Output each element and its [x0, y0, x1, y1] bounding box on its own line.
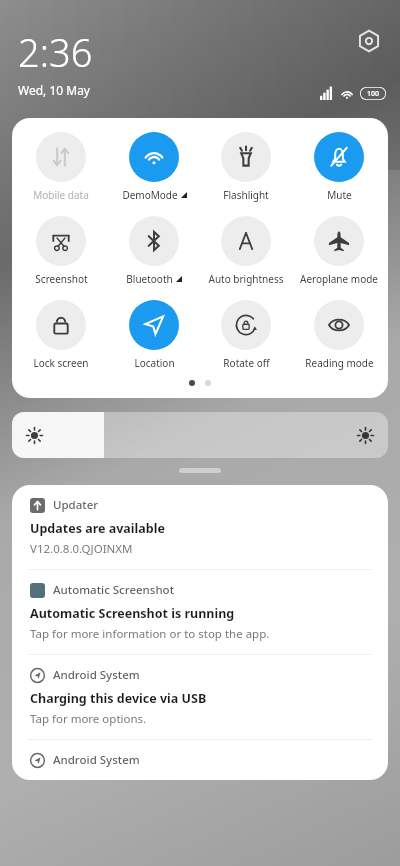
button[interactable]: Android System: [12, 740, 388, 780]
button[interactable]: Mobile data: [17, 130, 105, 204]
staticText: Tap for more options.: [30, 711, 147, 727]
staticText: 2:36: [18, 26, 93, 78]
button[interactable]: Automatic Screenshot: [12, 570, 388, 654]
button[interactable]: Aeroplane mode: [295, 214, 383, 288]
staticText: 100: [367, 89, 380, 99]
staticText: Android System: [53, 752, 140, 768]
staticText: Location: [134, 356, 175, 370]
staticText: Reading mode: [305, 356, 374, 370]
button[interactable]: Mute: [295, 130, 383, 204]
staticText: Lock screen: [33, 356, 89, 370]
staticText: Rotate off: [223, 356, 270, 370]
staticText: Flashlight: [223, 188, 269, 202]
staticText: Updates are available: [30, 520, 165, 537]
button[interactable]: Updater: [12, 485, 388, 569]
button[interactable]: Rotate off: [202, 298, 290, 372]
staticText: Android System: [53, 667, 140, 683]
staticText: Mobile data: [33, 188, 89, 202]
staticText: Auto brightness: [208, 272, 284, 286]
staticText: Tap for more information or to stop the …: [30, 626, 270, 642]
button[interactable]: DemoMode: [110, 130, 198, 204]
staticText: Bluetooth: [126, 272, 173, 286]
staticText: DemoMode: [122, 188, 178, 202]
button[interactable]: Brightness: [12, 412, 388, 458]
button[interactable]: Android System: [12, 655, 388, 739]
staticText: Mute: [327, 188, 352, 202]
button[interactable]: Reading mode: [295, 298, 383, 372]
button[interactable]: Auto brightness: [202, 214, 290, 288]
staticText: Wed, 10 May: [18, 82, 90, 98]
staticText: Screenshot: [35, 272, 88, 286]
button[interactable]: Flashlight: [202, 130, 290, 204]
staticText: Updater: [53, 497, 99, 513]
staticText: Automatic Screenshot: [53, 582, 175, 598]
staticText: Automatic Screenshot is running: [30, 605, 235, 622]
staticText: Charging this device via USB: [30, 690, 207, 707]
button[interactable]: Bluetooth: [110, 214, 198, 288]
button[interactable]: Lock screen: [17, 298, 105, 372]
button[interactable]: Location: [110, 298, 198, 372]
button[interactable]: Settings: [352, 24, 386, 58]
staticText: Aeroplane mode: [300, 272, 378, 286]
button[interactable]: Screenshot: [17, 214, 105, 288]
staticText: V12.0.8.0.QJOINXM: [30, 541, 133, 557]
